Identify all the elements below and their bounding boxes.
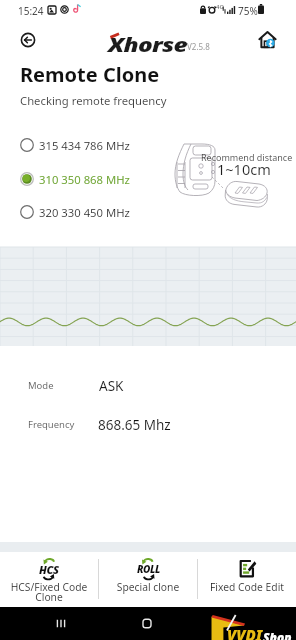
button[interactable]: Recents <box>51 616 71 631</box>
staticText: VVDI <box>227 625 263 640</box>
staticText: Remote Clone <box>20 61 160 88</box>
staticText: Checking remote frequency <box>20 93 167 108</box>
staticText: Fixed Code Edit <box>198 580 296 594</box>
staticText: 310 350 868 MHz <box>39 172 130 187</box>
staticText: 75% <box>238 4 258 18</box>
button[interactable]: Back <box>223 616 243 631</box>
staticText: Mode <box>28 379 54 392</box>
staticText: ROLL <box>137 562 160 576</box>
button[interactable]: Device connection <box>259 31 276 48</box>
staticText: Special clone <box>99 580 197 594</box>
staticText: HCS <box>39 562 59 577</box>
button[interactable]: Home <box>137 616 157 631</box>
staticText: 1~10cm <box>217 159 271 179</box>
button[interactable]: Fixed Code Edit <box>198 552 296 607</box>
staticText: V2.5.8 <box>187 41 210 52</box>
staticText: Xhorse <box>108 31 187 58</box>
staticText: Shop <box>263 629 292 640</box>
staticText: 4G <box>216 3 224 11</box>
button[interactable]: HCS <box>0 552 98 607</box>
button[interactable]: 310 350 868 MHz <box>20 168 140 190</box>
staticText: HCS/Fixed Code Clone <box>0 580 98 604</box>
staticText: 320 330 450 MHz <box>39 205 130 220</box>
button[interactable]: ROLL <box>99 552 197 607</box>
staticText: ASK <box>99 377 124 395</box>
staticText: Recommend distance <box>201 151 293 163</box>
staticText: 15:24 <box>18 4 44 18</box>
staticText: Frequency <box>28 418 75 431</box>
staticText: 315 434 786 MHz <box>39 138 130 153</box>
button[interactable]: 320 330 450 MHz <box>20 201 140 223</box>
button[interactable]: 315 434 786 MHz <box>20 134 140 156</box>
staticText: 868.65 Mhz <box>98 416 171 434</box>
button[interactable]: Back <box>20 32 36 48</box>
